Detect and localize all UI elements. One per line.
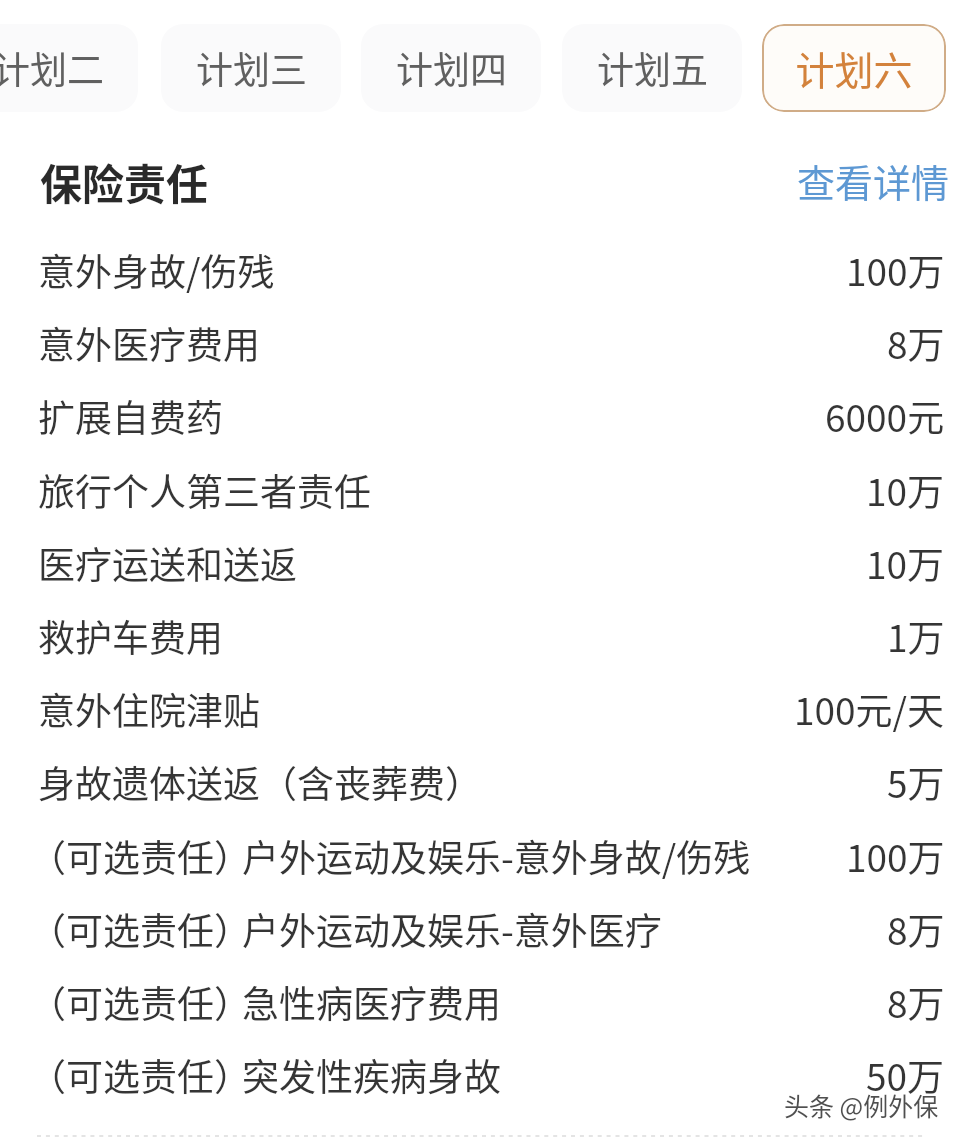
button[interactable]: （可选责任） (0, 965, 960, 1038)
staticText: 50万 (866, 1048, 945, 1102)
staticText: 100万 (846, 243, 945, 297)
button[interactable]: 身故遗体送返（含丧葬费） (0, 745, 960, 818)
staticText: 计划五 (597, 41, 708, 95)
button[interactable]: 保险责任 (40, 147, 209, 215)
staticText: 医疗运送和送返 (38, 536, 297, 590)
button[interactable]: 意外医疗费用 (0, 306, 960, 379)
staticText: 6000元 (825, 389, 945, 443)
button[interactable]: （可选责任） (0, 1038, 960, 1111)
staticText: 急性病医疗费用 (242, 975, 501, 1029)
staticText: 10万 (866, 463, 945, 517)
staticText: 户外运动及娱乐-意外身故/伤残 (242, 829, 751, 883)
staticText: 意外住院津贴 (38, 682, 260, 736)
button[interactable]: 意外身故/伤残 (0, 233, 960, 306)
staticText: （可选责任） (29, 902, 251, 956)
staticText: 100万 (846, 829, 945, 883)
button[interactable]: 扩展自费药 (0, 379, 960, 452)
staticText: 户外运动及娱乐-意外医疗 (242, 902, 662, 956)
staticText: （可选责任） (29, 829, 251, 883)
button[interactable]: （可选责任） (0, 892, 960, 965)
staticText: 计划四 (396, 41, 507, 95)
staticText: 头条 @例外保 (785, 1087, 940, 1123)
staticText: 1万 (887, 609, 945, 663)
staticText: 身故遗体送返（含丧葬费） (38, 755, 482, 809)
staticText: 头条 @例外保 (784, 1087, 939, 1123)
button[interactable]: 计划六 (762, 24, 946, 112)
button[interactable]: （可选责任） (0, 819, 960, 892)
staticText: 旅行个人第三者责任 (38, 463, 371, 517)
staticText: 头条 @例外保 (784, 1088, 939, 1124)
button[interactable]: 查看详情 (0, 146, 950, 214)
staticText: 头条 @例外保 (783, 1087, 938, 1123)
button[interactable]: 医疗运送和送返 (0, 526, 960, 599)
staticText: 保险责任 (40, 151, 209, 212)
staticText: 计划六 (795, 40, 913, 96)
staticText: 10万 (866, 536, 945, 590)
staticText: 8万 (887, 316, 945, 370)
button[interactable]: 意外住院津贴 (0, 672, 960, 745)
staticText: 救护车费用 (38, 609, 223, 663)
button[interactable]: 计划五 (562, 24, 742, 112)
staticText: 突发性疾病身故 (242, 1048, 501, 1102)
staticText: 头条 @例外保 (784, 1086, 939, 1122)
staticText: 意外医疗费用 (38, 316, 260, 370)
staticText: 查看详情 (797, 153, 950, 208)
staticText: 8万 (887, 902, 945, 956)
staticText: （可选责任） (29, 975, 251, 1029)
staticText: 扩展自费药 (38, 389, 223, 443)
button[interactable]: 计划四 (361, 24, 541, 112)
staticText: 8万 (887, 975, 945, 1029)
button[interactable]: 旅行个人第三者责任 (0, 453, 960, 526)
staticText: 计划三 (196, 41, 307, 95)
button[interactable]: 计划二 (0, 24, 138, 112)
staticText: 5万 (887, 755, 945, 809)
staticText: （可选责任） (29, 1048, 251, 1102)
staticText: 100元/天 (794, 682, 945, 736)
staticText: 计划二 (0, 41, 104, 95)
button[interactable]: 计划三 (161, 24, 341, 112)
staticText: 意外身故/伤残 (38, 243, 275, 297)
button[interactable]: 救护车费用 (0, 599, 960, 672)
